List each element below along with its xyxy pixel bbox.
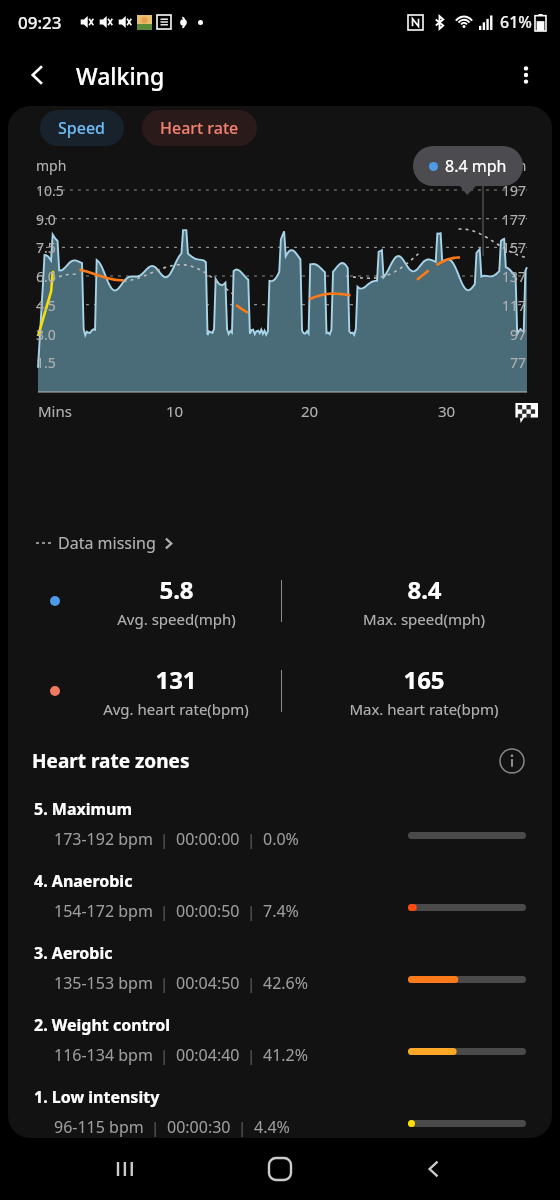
staticText: 3.0 <box>36 325 56 344</box>
staticText: 20 <box>301 401 319 421</box>
staticText: 30 <box>438 401 456 421</box>
staticText: 41.2% <box>263 1044 309 1066</box>
button[interactable]: Back <box>16 53 60 97</box>
staticText: 177 <box>502 210 527 229</box>
staticText: | <box>240 974 263 993</box>
staticText: 6.0 <box>36 267 56 286</box>
staticText: | <box>231 1118 254 1137</box>
staticText: 10 <box>166 401 184 421</box>
staticText: 165 <box>403 663 445 696</box>
staticText: 157 <box>502 238 527 257</box>
staticText: 10.5 <box>36 181 64 200</box>
staticText: 154-172 bpm <box>54 900 153 922</box>
staticText: 00:00:00 <box>176 828 240 850</box>
button[interactable]: Speed <box>40 110 124 146</box>
staticText: Heart rate zones <box>32 748 190 774</box>
staticText: | <box>153 1046 176 1065</box>
staticText: bpm <box>496 156 527 175</box>
staticText: Data missing <box>58 532 156 554</box>
staticText: Heart rate <box>160 117 239 139</box>
button[interactable]: 2. Weight control <box>8 1008 552 1080</box>
staticText: | <box>153 974 176 993</box>
staticText: | <box>153 830 176 849</box>
staticText: 00:00:30 <box>167 1116 231 1138</box>
button[interactable]: Home <box>252 1141 308 1197</box>
staticText: 5. Maximum <box>34 798 133 820</box>
staticText: Max. speed(mph) <box>363 609 485 629</box>
staticText: 00:04:40 <box>176 1044 240 1066</box>
staticText: 77 <box>510 353 527 372</box>
staticText: 135-153 bpm <box>54 972 153 994</box>
staticText: 137 <box>502 267 527 286</box>
button[interactable]: Back <box>406 1141 462 1197</box>
staticText: 5.8 <box>159 573 194 606</box>
staticText: 4. Anaerobic <box>34 870 133 892</box>
staticText: Walking <box>76 60 165 91</box>
staticText: 0.0% <box>263 828 299 850</box>
button[interactable]: More options <box>504 53 548 97</box>
button[interactable]: 5. Maximum <box>8 792 552 864</box>
staticText: Speed <box>58 117 106 139</box>
staticText: 197 <box>502 181 527 200</box>
staticText: 09:23 <box>18 11 62 34</box>
staticText: 97 <box>510 325 527 344</box>
button[interactable]: Heart rate <box>142 110 257 146</box>
staticText: 7.5 <box>36 238 56 257</box>
staticText: Avg. speed(mph) <box>117 609 236 629</box>
staticText: | <box>240 830 263 849</box>
staticText: | <box>153 902 176 921</box>
staticText: 8.4 <box>407 573 442 606</box>
button[interactable]: 3. Aerobic <box>8 936 552 1008</box>
staticText: 1. Low intensity <box>34 1086 160 1108</box>
staticText: 00:04:50 <box>176 972 240 994</box>
staticText: 9.0 <box>36 210 56 229</box>
staticText: | <box>144 1118 167 1137</box>
staticText: 8.4 mph <box>445 155 507 177</box>
staticText: | <box>240 902 263 921</box>
staticText: 3. Aerobic <box>34 942 113 964</box>
staticText: mph <box>36 156 67 175</box>
staticText: | <box>240 1046 263 1065</box>
staticText: 4.5 <box>36 296 56 315</box>
staticText: 116-134 bpm <box>54 1044 153 1066</box>
staticText: 173-192 bpm <box>54 828 153 850</box>
staticText: 4.4% <box>254 1116 290 1138</box>
button[interactable]: Heart rate zones info <box>496 745 528 777</box>
button[interactable]: Data missing <box>36 532 175 554</box>
staticText: 117 <box>502 296 527 315</box>
staticText: 42.6% <box>263 972 309 994</box>
staticText: 00:00:50 <box>176 900 240 922</box>
button[interactable]: 1. Low intensity <box>8 1080 552 1138</box>
staticText: 96-115 bpm <box>54 1116 144 1138</box>
staticText: 7.4% <box>263 900 299 922</box>
button[interactable]: 4. Anaerobic <box>8 864 552 936</box>
staticText: 131 <box>155 663 197 696</box>
staticText: 61% <box>500 11 532 33</box>
staticText: 1.5 <box>36 353 56 372</box>
staticText: Avg. heart rate(bpm) <box>103 699 249 719</box>
staticText: 2. Weight control <box>34 1014 171 1036</box>
button[interactable]: Recents <box>98 1141 154 1197</box>
staticText: Mins <box>38 401 72 421</box>
staticText: Max. heart rate(bpm) <box>349 699 499 719</box>
